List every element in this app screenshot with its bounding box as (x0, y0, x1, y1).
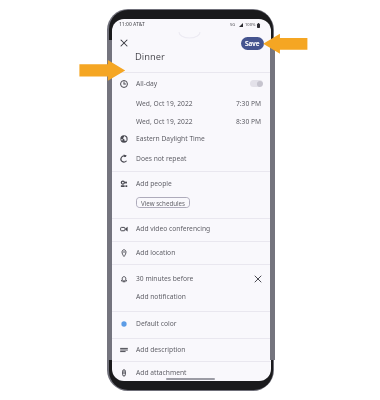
button[interactable]: View schedules (136, 197, 190, 208)
button[interactable]: Wed, Oct 19, 2022 (112, 96, 271, 111)
staticText: All-day (136, 79, 158, 88)
staticText: 30 minutes before (136, 274, 194, 283)
staticText: View schedules (141, 199, 186, 207)
staticText: Add description (136, 345, 186, 354)
button[interactable]: Add video conferencing (112, 220, 271, 237)
button[interactable]: Add attachment (112, 364, 271, 381)
staticText: Add attachment (136, 368, 187, 377)
button[interactable]: Default color (112, 315, 271, 332)
button[interactable]: Add notification (112, 289, 271, 304)
staticText: Dinner (135, 50, 165, 61)
staticText: Add video conferencing (136, 224, 211, 233)
button[interactable]: All-day toggle (250, 80, 263, 87)
staticText: Eastern Daylight Time (136, 134, 205, 143)
button[interactable]: All-day (112, 75, 271, 92)
staticText: Add notification (136, 292, 186, 301)
button[interactable]: Add people (112, 175, 271, 192)
staticText: Wed, Oct 19, 2022 (136, 117, 193, 126)
staticText: Default color (136, 319, 177, 328)
staticText: 100% (245, 22, 256, 28)
staticText: 7:30 PM (236, 99, 262, 108)
button[interactable]: Remove notification (252, 273, 263, 284)
button[interactable]: Close (117, 36, 131, 50)
staticText: Save (245, 39, 260, 48)
button[interactable]: Save (241, 37, 264, 50)
staticText: Add location (136, 248, 176, 257)
button[interactable]: Does not repeat (112, 150, 271, 167)
button[interactable]: Wed, Oct 19, 2022 (112, 114, 271, 129)
staticText: Add people (136, 179, 172, 188)
button[interactable]: Eastern Daylight Time (112, 130, 271, 147)
button[interactable]: Add description (112, 341, 271, 358)
staticText: 11:00 AT&T (119, 21, 145, 28)
button[interactable]: Add location (112, 244, 271, 261)
staticText: Does not repeat (136, 154, 187, 163)
staticText: 5G (230, 22, 236, 28)
staticText: Wed, Oct 19, 2022 (136, 99, 193, 108)
button[interactable]: 30 minutes before (112, 270, 271, 287)
staticText: 8:30 PM (236, 117, 262, 126)
